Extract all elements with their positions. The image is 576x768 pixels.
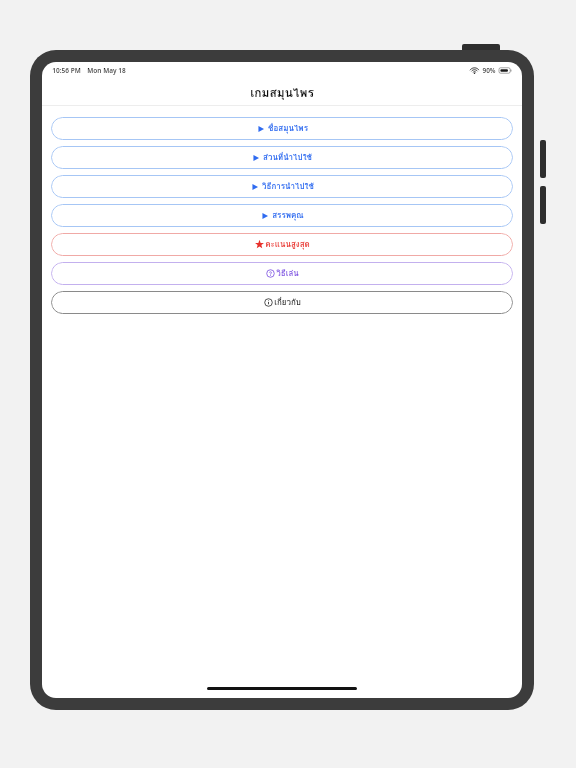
staticText: เกี่ยวกับ <box>274 296 301 309</box>
button[interactable]: เกี่ยวกับ <box>51 291 513 314</box>
staticText: เกมสมุนไพร <box>250 83 314 102</box>
button[interactable]: วิธีเล่น <box>51 262 513 285</box>
staticText: Mon May 18 <box>87 66 126 75</box>
staticText: ส่วนที่นำไปใช้ <box>263 151 312 164</box>
staticText: สรรพคุณ <box>272 209 304 222</box>
staticText: ชื่อสมุนไพร <box>268 122 308 135</box>
button[interactable]: ชื่อสมุนไพร <box>51 117 513 140</box>
staticText: วิธีเล่น <box>276 267 299 280</box>
button[interactable]: สรรพคุณ <box>51 204 513 227</box>
staticText: 10:56 PM <box>52 66 81 75</box>
staticText: 90% <box>482 66 496 75</box>
staticText: วิธีการนำไปใช้ <box>262 180 314 193</box>
button[interactable]: วิธีการนำไปใช้ <box>51 175 513 198</box>
button[interactable]: คะแนนสูงสุด <box>51 233 513 256</box>
button[interactable]: ส่วนที่นำไปใช้ <box>51 146 513 169</box>
staticText: คะแนนสูงสุด <box>265 238 310 251</box>
